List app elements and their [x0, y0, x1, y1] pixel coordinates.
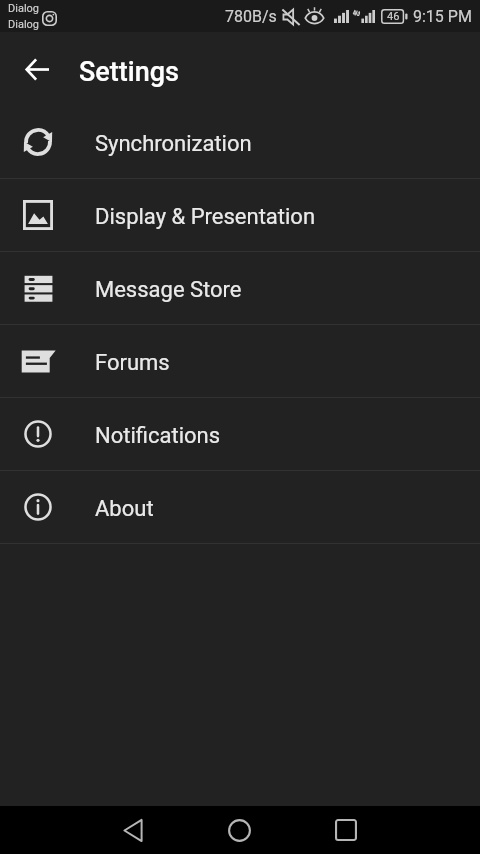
staticText: 780B/s — [225, 7, 277, 26]
button[interactable]: About — [0, 471, 480, 543]
staticText: Forums — [95, 350, 170, 376]
staticText: Settings — [79, 56, 179, 88]
button[interactable]: Notifications — [0, 398, 480, 470]
staticText: Dialog — [8, 18, 40, 31]
button[interactable]: Home — [209, 806, 269, 854]
staticText: About — [95, 496, 154, 522]
button[interactable]: Synchronization — [0, 106, 480, 178]
staticText: 9:15 PM — [413, 7, 472, 26]
staticText: Message Store — [95, 277, 242, 303]
button[interactable]: Message Store — [0, 252, 480, 324]
staticText: Synchronization — [95, 131, 252, 157]
button[interactable]: Back — [103, 806, 163, 854]
staticText: Display & Presentation — [95, 204, 316, 230]
button[interactable]: Recent apps — [316, 806, 376, 854]
button[interactable]: Display & Presentation — [0, 179, 480, 251]
button[interactable]: Navigate up — [13, 45, 61, 93]
staticText: 46 — [387, 10, 400, 23]
staticText: Notifications — [95, 423, 221, 449]
staticText: Dialog — [8, 2, 40, 15]
button[interactable]: Forums — [0, 325, 480, 397]
